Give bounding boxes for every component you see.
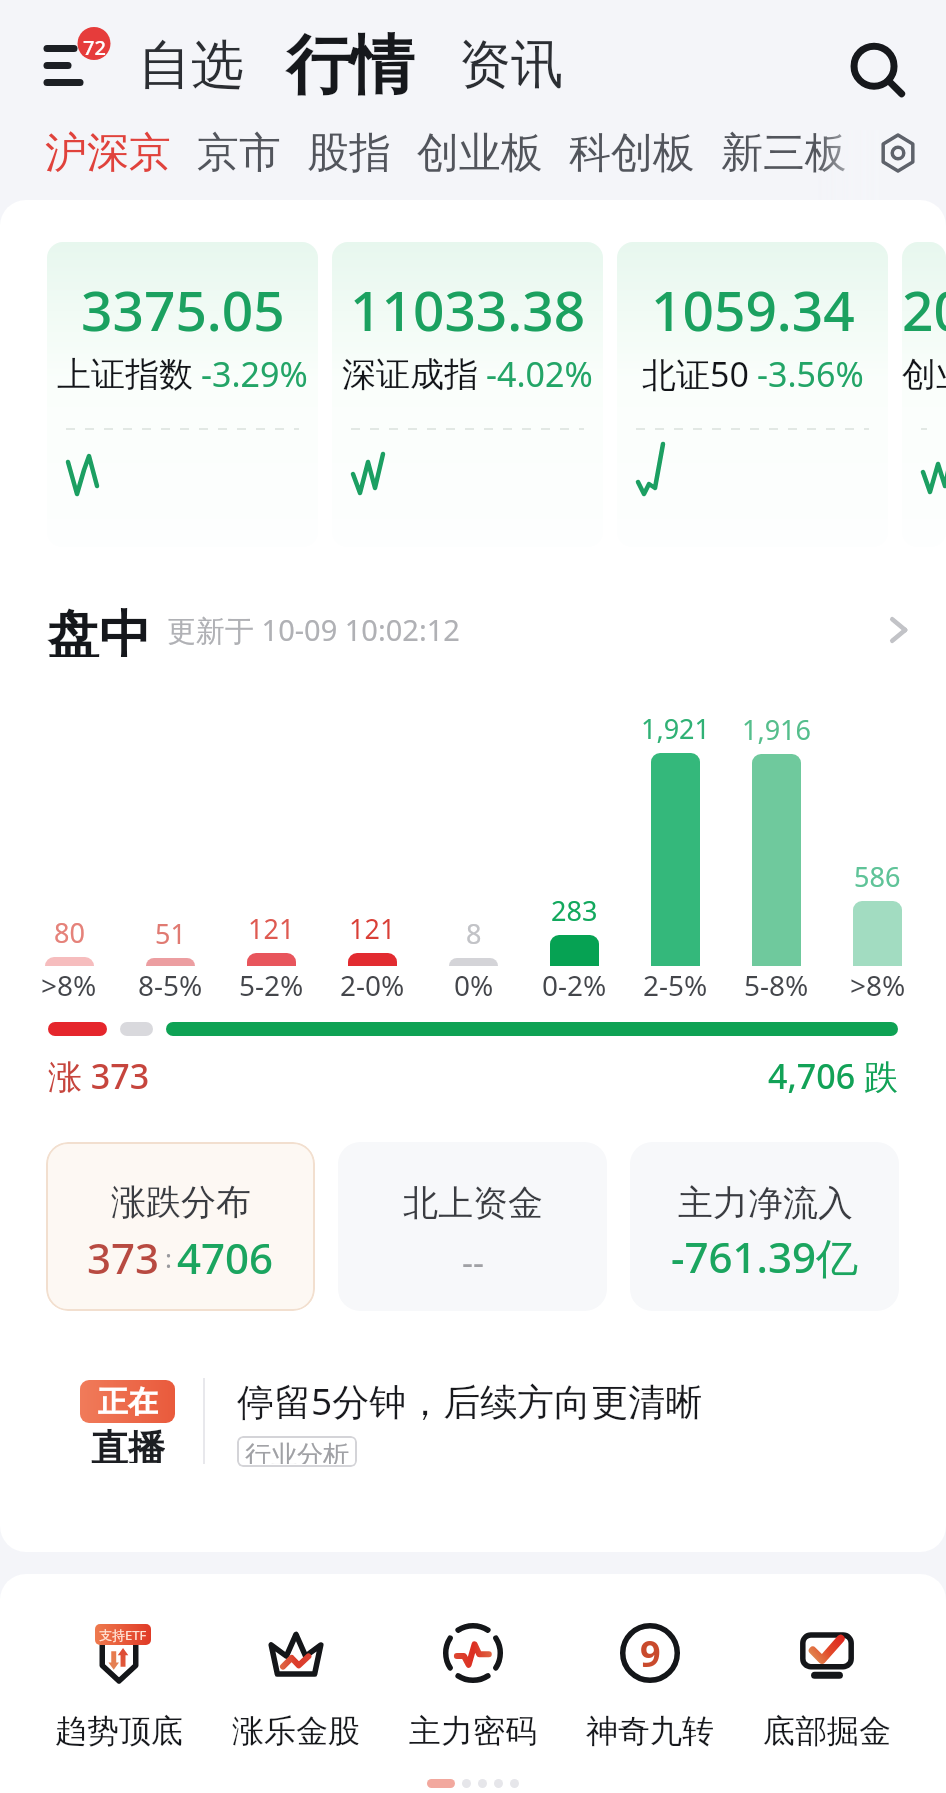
staticText: 5-2% (239, 966, 304, 1004)
staticText: 神奇九转 (586, 1711, 714, 1751)
button[interactable]: 沪深京 (32, 117, 184, 187)
staticText: 1,916 (742, 711, 812, 748)
button[interactable]: 1059.34 (617, 242, 888, 547)
staticText: 2035.40 (902, 272, 946, 347)
button[interactable]: 正在 (0, 1375, 946, 1467)
button[interactable]: 底部掘金 (738, 1622, 915, 1751)
staticText: 51 (155, 915, 186, 952)
staticText: 上证指数 (57, 353, 193, 396)
staticText: 底部掘金 (763, 1711, 891, 1751)
button[interactable]: 自选 (132, 20, 250, 111)
button[interactable]: 主力净流入 (630, 1142, 899, 1311)
staticText: 资讯 (459, 32, 563, 98)
staticText: -761.39亿 (671, 1228, 859, 1285)
button[interactable]: 资讯 (453, 20, 569, 110)
button[interactable]: 股指 (294, 117, 404, 187)
staticText: 4706 (177, 1229, 274, 1286)
staticText: 盘中 (47, 603, 151, 657)
staticText: >8% (41, 966, 97, 1004)
staticText: 涨乐金股 (232, 1711, 360, 1751)
staticText: 科创板 (569, 127, 695, 177)
staticText: 京市 (197, 127, 281, 177)
button[interactable]: 2035.40 (902, 242, 946, 547)
staticText: 新三板 (721, 127, 847, 177)
staticText: 3375.05 (81, 272, 285, 347)
button[interactable]: 9 (561, 1622, 738, 1751)
staticText: 11033.38 (350, 272, 586, 347)
staticText: 1059.34 (651, 272, 855, 347)
staticText: 深证成指 (342, 353, 478, 396)
staticText: 586 (854, 858, 901, 895)
staticText: -3.29% (201, 351, 308, 397)
staticText: 创业板 (417, 127, 543, 177)
staticText: 2-0% (340, 966, 405, 1004)
staticText: 121 (349, 910, 396, 947)
staticText: -4.02% (486, 351, 593, 397)
staticText: 行情 (286, 25, 414, 106)
button[interactable]: 京市 (184, 117, 294, 187)
button[interactable]: 主力密码 (384, 1622, 561, 1751)
staticText: -- (462, 1239, 484, 1285)
staticText: 直播 (91, 1425, 165, 1463)
staticText: 趋势顶底 (55, 1711, 183, 1751)
button[interactable]: 创业板 (404, 117, 556, 187)
staticText: 283 (551, 892, 598, 929)
staticText: 涨 373 (48, 1053, 150, 1099)
button[interactable]: Settings (872, 127, 924, 179)
button[interactable]: 支持ETF (31, 1622, 207, 1751)
staticText: 9 (640, 1629, 661, 1678)
staticText: 80 (54, 914, 85, 951)
button[interactable]: 涨乐金股 (207, 1622, 384, 1751)
button[interactable]: 北上资金 (338, 1142, 607, 1311)
staticText: 更新于 10-09 10:02:12 (167, 610, 460, 650)
staticText: 涨跌分布 (111, 1180, 251, 1224)
staticText: 创业板指 (902, 353, 946, 396)
staticText: : (165, 1240, 172, 1275)
button[interactable]: 科创板 (556, 117, 708, 187)
button[interactable]: 盘中 (0, 603, 946, 657)
staticText: 北上资金 (403, 1181, 543, 1225)
staticText: 2-5% (643, 966, 708, 1004)
staticText: 支持ETF (99, 1626, 147, 1644)
button[interactable]: 新三板 (708, 117, 860, 187)
staticText: 1,921 (641, 710, 711, 747)
staticText: 主力净流入 (678, 1181, 853, 1225)
staticText: 0-2% (542, 966, 607, 1004)
button[interactable]: Search (836, 22, 922, 108)
staticText: 8 (466, 915, 482, 952)
staticText: 正在 (98, 1383, 158, 1421)
staticText: 北证50 (642, 351, 749, 397)
button[interactable]: 11033.38 (332, 242, 603, 547)
staticText: 沪深京 (45, 127, 171, 177)
button[interactable]: 行情 (280, 13, 420, 118)
staticText: 8-5% (138, 966, 203, 1004)
staticText: 373 (87, 1229, 160, 1286)
staticText: 自选 (138, 32, 244, 99)
staticText: 主力密码 (409, 1711, 537, 1751)
staticText: >8% (850, 966, 906, 1004)
staticText: 5-8% (744, 966, 809, 1004)
staticText: 股指 (307, 127, 391, 177)
staticText: 4,706 跌 (768, 1053, 898, 1099)
button[interactable]: 3375.05 (47, 242, 318, 547)
button[interactable]: Menu (35, 25, 115, 105)
staticText: 0% (454, 966, 494, 1004)
staticText: -3.56% (757, 351, 864, 397)
staticText: 行业分析 (245, 1439, 349, 1464)
staticText: 72 (83, 34, 106, 61)
staticText: 121 (248, 910, 295, 947)
button[interactable]: 涨跌分布 (46, 1142, 315, 1311)
staticText: 停留5分钟，后续方向更清晰 (237, 1375, 703, 1426)
